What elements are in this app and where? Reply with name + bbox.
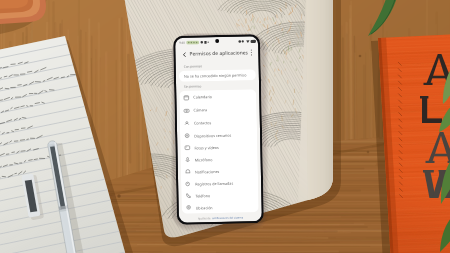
staticText: Contactos bbox=[194, 120, 212, 125]
staticText: Dispositivos cercanos bbox=[194, 133, 232, 138]
button[interactable]: Fotos y vídeos bbox=[180, 140, 257, 154]
button[interactable]: Dispositivos cercanos bbox=[180, 128, 257, 142]
staticText: Notificaciones bbox=[195, 169, 220, 174]
staticText: Micrófono bbox=[195, 157, 213, 162]
button[interactable]: Ubicación bbox=[181, 200, 259, 214]
button[interactable]: Teléfono bbox=[181, 188, 258, 202]
button[interactable]: Contactos bbox=[180, 115, 257, 130]
staticText: Calendario bbox=[193, 94, 212, 99]
staticText: Cámara bbox=[193, 107, 208, 112]
staticText: Permisos de aplicaciones bbox=[189, 49, 248, 58]
staticText: Teléfono bbox=[195, 193, 210, 198]
button[interactable]: Notificaciones bbox=[181, 164, 258, 178]
button[interactable]: Calendario bbox=[179, 89, 256, 104]
staticText: Fotos y vídeos bbox=[194, 145, 219, 150]
button[interactable]: No se ha concedido ningún permiso bbox=[179, 69, 256, 82]
staticText: Ubicación bbox=[196, 205, 213, 210]
button[interactable]: notificaciones del sistema bbox=[212, 215, 244, 220]
staticText: Con permiso bbox=[184, 64, 203, 69]
button[interactable]: Back bbox=[179, 50, 188, 59]
staticText: Sin permiso bbox=[184, 84, 202, 89]
button[interactable]: Registros de llamadas bbox=[181, 176, 258, 190]
staticText: No se ha concedido ningún permiso bbox=[184, 72, 247, 79]
staticText: 9:40 bbox=[179, 41, 185, 45]
button[interactable]: More options bbox=[248, 48, 254, 56]
staticText: Registros de llamadas bbox=[195, 181, 233, 186]
button[interactable]: Cámara bbox=[179, 102, 257, 117]
staticText: Ajustes de bbox=[198, 216, 212, 220]
button[interactable]: Micrófono bbox=[180, 152, 258, 166]
